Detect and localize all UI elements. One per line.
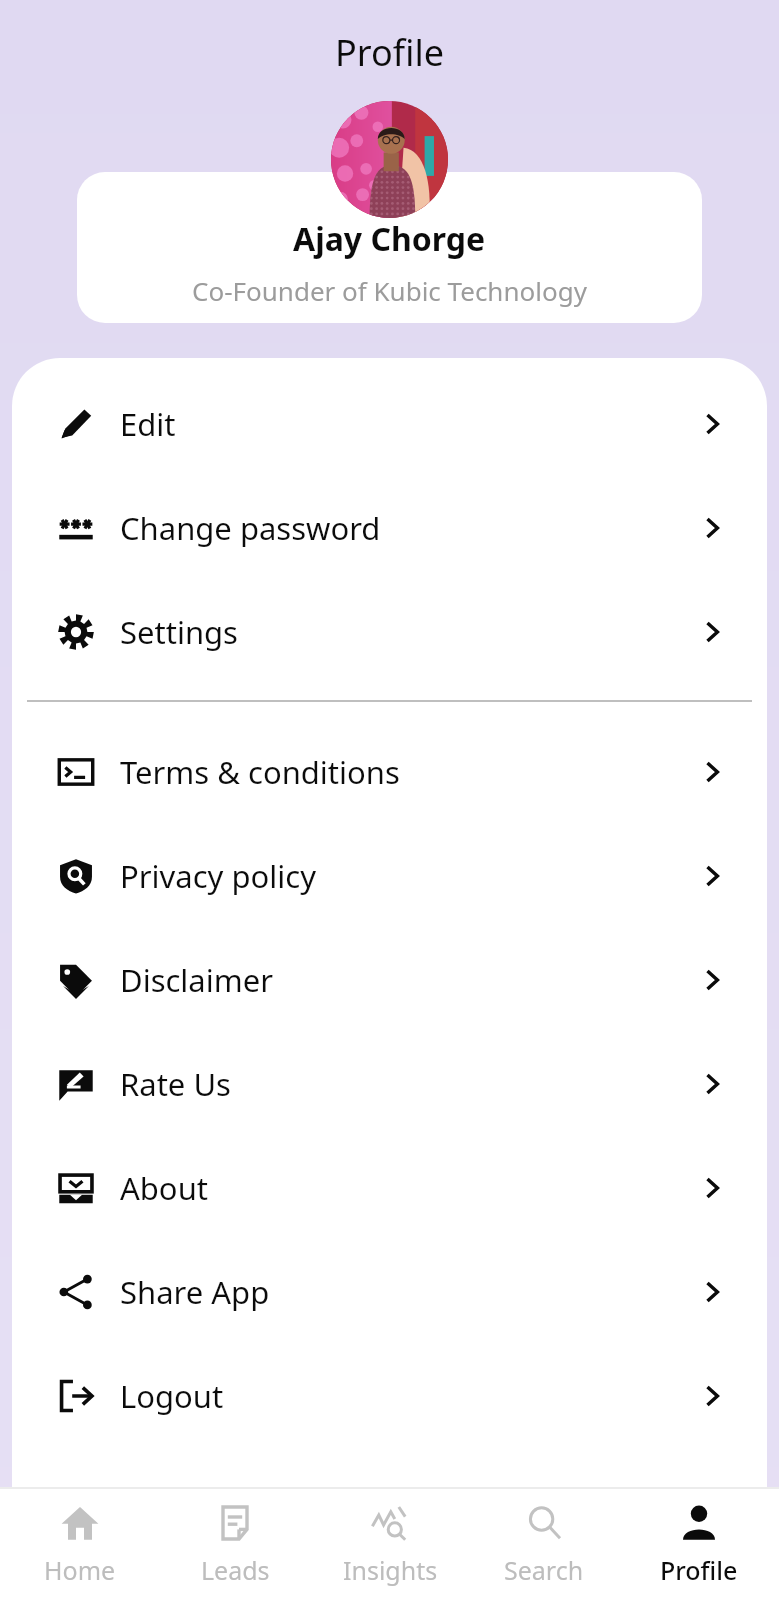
staticText: Privacy policy	[120, 855, 316, 897]
button[interactable]: Share App	[12, 1240, 767, 1344]
button[interactable]: Logout	[12, 1344, 767, 1448]
button[interactable]: Rate Us	[12, 1032, 767, 1136]
staticText: Search	[504, 1553, 584, 1587]
staticText: Ajay Chorge	[293, 217, 486, 261]
button[interactable]: Profile photo	[331, 101, 448, 218]
button[interactable]: Terms & conditions	[12, 720, 767, 824]
button[interactable]: Leads	[160, 1489, 310, 1600]
button[interactable]: Profile	[624, 1489, 774, 1600]
button[interactable]: Search	[469, 1489, 619, 1600]
button[interactable]: Home	[5, 1489, 155, 1600]
staticText: Profile	[0, 28, 779, 77]
staticText: Edit	[120, 403, 176, 445]
button[interactable]: Disclaimer	[12, 928, 767, 1032]
button[interactable]: Privacy policy	[12, 824, 767, 928]
staticText: Insights	[343, 1553, 438, 1587]
button[interactable]: Change password	[12, 476, 767, 580]
staticText: Rate Us	[120, 1063, 231, 1105]
button[interactable]: Insights	[315, 1489, 465, 1600]
staticText: Disclaimer	[120, 959, 274, 1001]
staticText: About	[120, 1167, 208, 1209]
staticText: Co-Founder of Kubic Technology	[192, 273, 587, 308]
staticText: Settings	[120, 611, 238, 653]
staticText: Terms & conditions	[120, 751, 400, 793]
staticText: Leads	[201, 1553, 270, 1587]
staticText: Change password	[120, 507, 381, 549]
button[interactable]: Edit	[12, 372, 767, 476]
button[interactable]: Settings	[12, 580, 767, 684]
staticText: Profile	[660, 1553, 738, 1587]
button[interactable]: About	[12, 1136, 767, 1240]
staticText: Logout	[120, 1375, 224, 1417]
staticText: Share App	[120, 1271, 270, 1313]
staticText: Home	[44, 1553, 116, 1587]
button[interactable]: Ajay Chorge	[77, 172, 702, 323]
